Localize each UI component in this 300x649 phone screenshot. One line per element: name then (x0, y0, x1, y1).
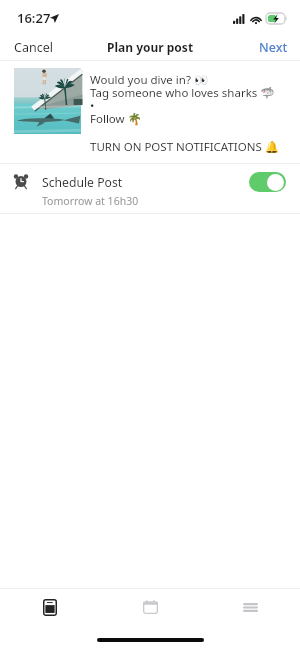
button[interactable]: Feed (0, 587, 100, 627)
button[interactable]: Schedule post toggle (249, 172, 286, 192)
staticText: Next (259, 39, 288, 56)
button[interactable]: Schedule Post (0, 164, 300, 213)
staticText: Would you dive in? 👀 Tag someone who lov… (90, 72, 275, 126)
staticText: Tomorrow at 16h30 (42, 194, 139, 208)
button[interactable]: Next (247, 35, 300, 60)
button[interactable]: Calendar (100, 587, 200, 627)
button[interactable]: Menu (200, 587, 300, 627)
staticText: Plan your post (107, 39, 194, 55)
staticText: TURN ON POST NOTIFICATIONS 🔔 (90, 139, 280, 155)
staticText: Cancel (14, 39, 53, 56)
staticText: 16:27 (17, 9, 51, 27)
staticText: Schedule Post (42, 174, 123, 191)
button[interactable]: Cancel (0, 35, 67, 60)
button[interactable]: Would you dive in? 👀 Tag someone who lov… (0, 61, 300, 163)
